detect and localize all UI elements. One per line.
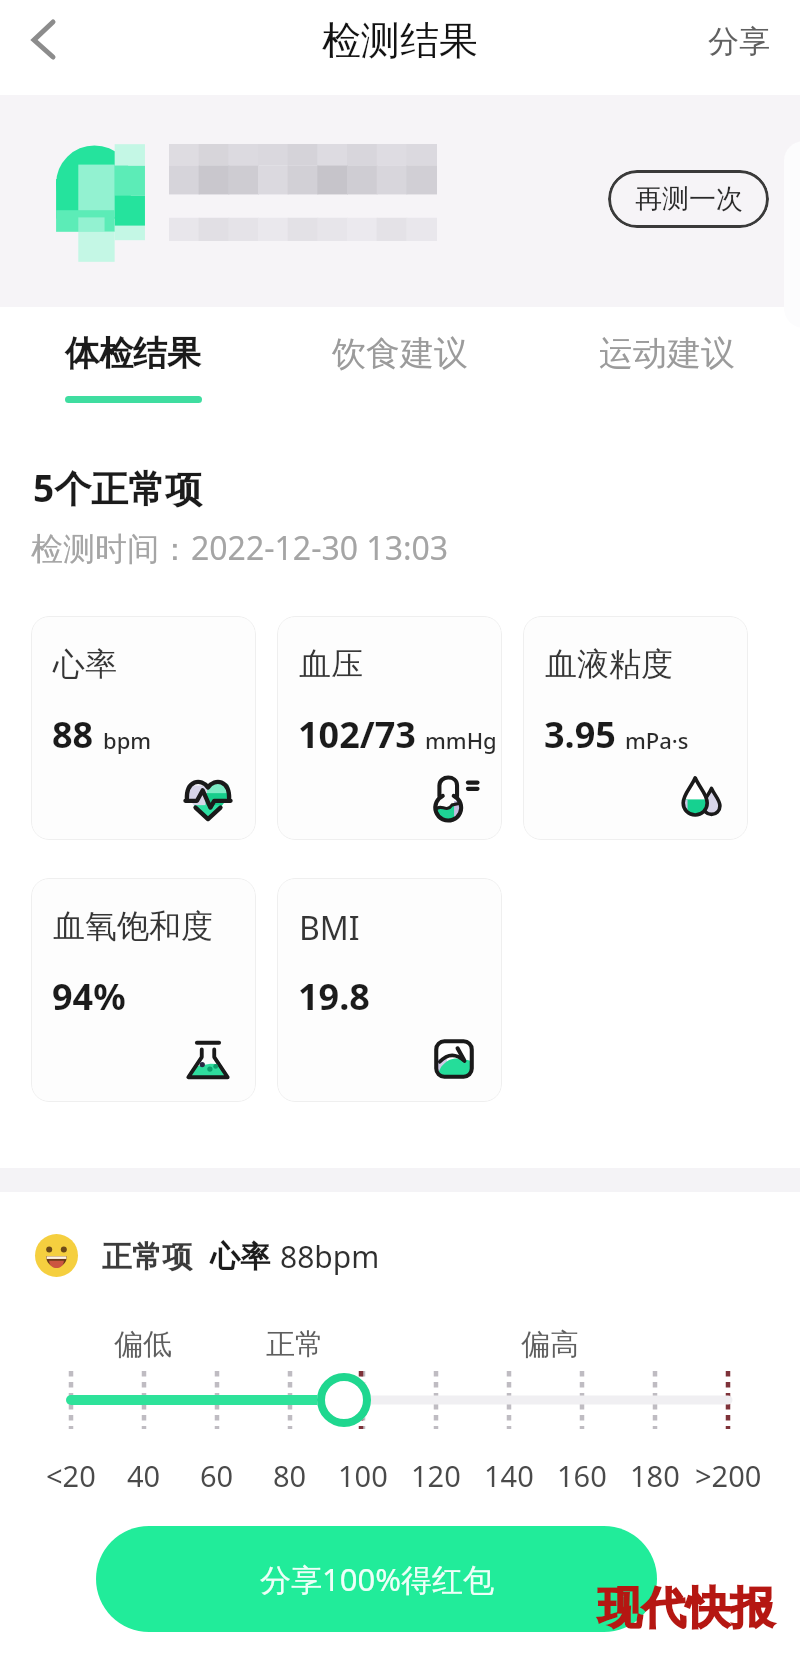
button[interactable]: 饮食建议 <box>266 307 533 413</box>
staticText: 心率 <box>53 644 117 684</box>
staticText: 120 <box>411 1456 461 1495</box>
staticText: 5个正常项 <box>33 462 203 513</box>
staticText: 运动建议 <box>599 332 735 375</box>
staticText: 现代快报 <box>598 1581 774 1636</box>
staticText: 偏低 <box>114 1326 172 1363</box>
staticText: 体检结果 <box>65 332 201 375</box>
button[interactable]: Back <box>4 6 68 70</box>
staticText: 160 <box>557 1456 607 1495</box>
staticText: 60 <box>200 1456 234 1495</box>
button[interactable]: 心率 <box>31 616 256 840</box>
staticText: 102/73 <box>298 710 416 759</box>
staticText: <20 <box>46 1456 96 1495</box>
staticText: mPa·s <box>625 725 689 755</box>
button[interactable]: 血氧饱和度 <box>31 878 256 1102</box>
staticText: 40 <box>127 1456 161 1495</box>
button[interactable]: 体检结果 <box>0 307 266 413</box>
staticText: 正常 <box>266 1326 324 1363</box>
button[interactable]: BMI <box>277 878 502 1102</box>
staticText: 正常项 <box>102 1238 192 1276</box>
staticText: 血压 <box>299 644 363 684</box>
staticText: 140 <box>484 1456 534 1495</box>
staticText: 3.95 <box>544 710 616 759</box>
staticText: 88 <box>52 710 94 759</box>
staticText: 88bpm <box>280 1236 380 1277</box>
staticText: 检测时间：2022-12-30 13:03 <box>31 526 449 570</box>
staticText: 偏高 <box>521 1326 579 1363</box>
button[interactable]: 运动建议 <box>533 307 800 413</box>
staticText: 再测一次 <box>635 182 743 216</box>
staticText: 血氧饱和度 <box>53 906 213 946</box>
staticText: 80 <box>273 1456 307 1495</box>
staticText: 饮食建议 <box>332 332 468 375</box>
button[interactable]: 血液粘度 <box>523 616 748 840</box>
staticText: BMI <box>299 906 360 950</box>
button[interactable]: 血压 <box>277 616 502 840</box>
button[interactable]: 再测一次 <box>608 170 769 228</box>
staticText: mmHg <box>425 725 497 755</box>
staticText: 检测结果 <box>322 16 478 65</box>
staticText: bpm <box>103 725 152 755</box>
staticText: 分享 <box>708 22 770 61</box>
staticText: 血液粘度 <box>545 644 673 684</box>
staticText: 心率 <box>210 1238 270 1276</box>
button[interactable]: 分享 <box>678 6 800 77</box>
staticText: 180 <box>630 1456 680 1495</box>
staticText: 100 <box>338 1456 388 1495</box>
staticText: >200 <box>695 1456 762 1495</box>
staticText: 分享100%得红包 <box>260 1558 494 1600</box>
staticText: 19.8 <box>298 972 370 1021</box>
staticText: 94% <box>52 972 126 1021</box>
button[interactable]: 分享100%得红包 <box>96 1526 657 1632</box>
